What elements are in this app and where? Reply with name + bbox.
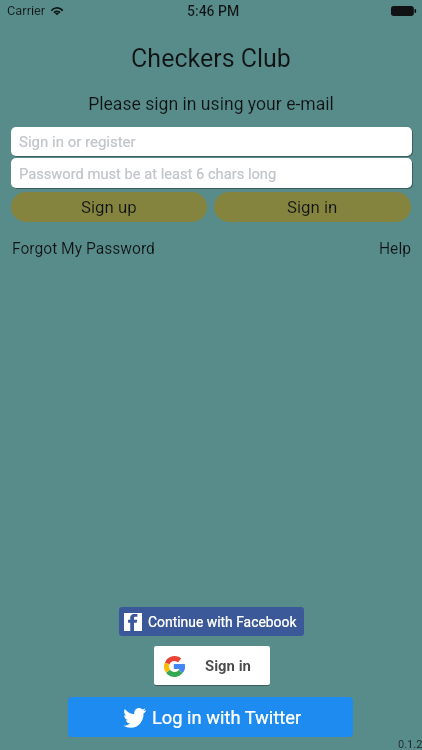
button[interactable]: Sign in bbox=[214, 192, 411, 222]
staticText: Checkers Club bbox=[0, 44, 422, 73]
button[interactable]: Help bbox=[377, 238, 413, 260]
staticText: Help bbox=[379, 240, 411, 258]
button[interactable]: Password must be at least 6 chars long bbox=[11, 158, 412, 188]
staticText: 0.1.2 bbox=[398, 738, 422, 750]
staticText: Please sign in using your e-mail bbox=[0, 94, 422, 115]
staticText: Sign up bbox=[81, 197, 137, 217]
staticText: Sign in bbox=[205, 657, 251, 674]
button[interactable]: Facebook logo bbox=[119, 607, 304, 636]
staticText: Carrier bbox=[7, 3, 46, 18]
button[interactable]: Sign in or register bbox=[11, 127, 412, 156]
staticText: Sign in bbox=[287, 197, 338, 217]
other: Facebook logo bbox=[124, 613, 142, 631]
staticText: Continue with Facebook bbox=[148, 614, 297, 630]
staticText: Sign in or register bbox=[19, 133, 136, 151]
staticText: 5:46 PM bbox=[187, 3, 240, 19]
button[interactable]: Forgot My Password bbox=[10, 238, 157, 260]
staticText: Forgot My Password bbox=[12, 240, 155, 258]
button[interactable]: Twitter logo bbox=[68, 697, 353, 737]
button[interactable]: Google logo bbox=[154, 646, 270, 685]
button[interactable]: Sign up bbox=[11, 192, 207, 222]
other: Twitter logo bbox=[124, 708, 146, 727]
staticText: Password must be at least 6 chars long bbox=[19, 165, 277, 182]
other: Google logo bbox=[164, 656, 185, 677]
staticText: Log in with Twitter bbox=[152, 707, 302, 728]
